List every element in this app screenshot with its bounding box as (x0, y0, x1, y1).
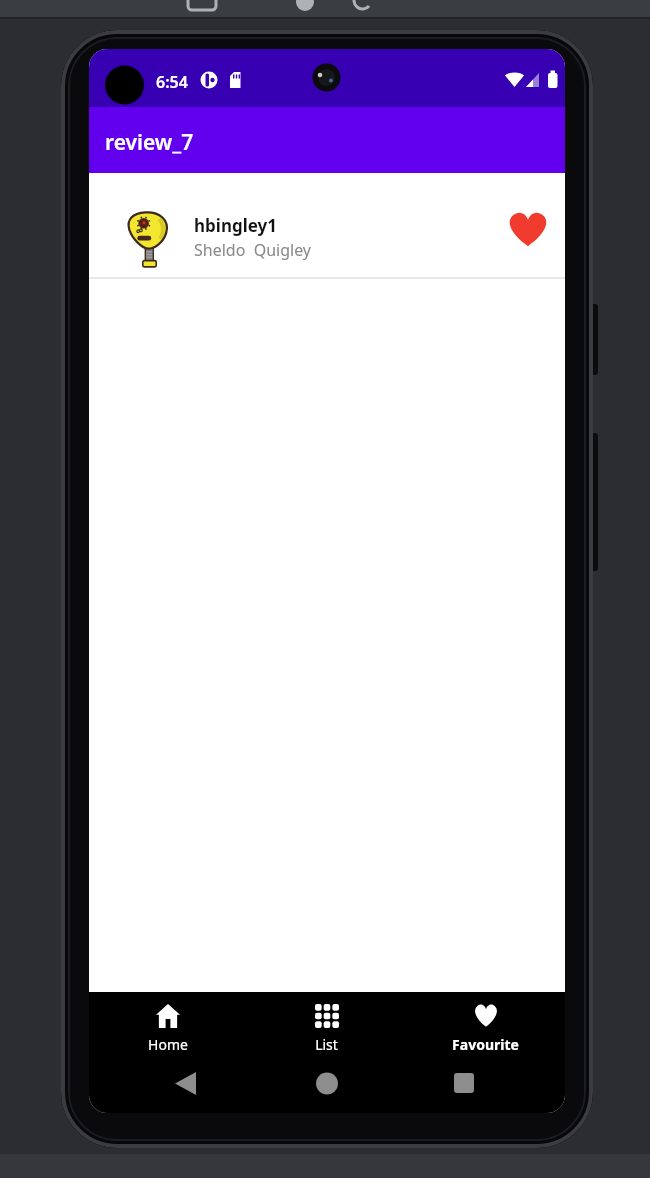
button[interactable]: Favourite (406, 992, 565, 1062)
staticText: hbingley1 (194, 214, 277, 237)
staticText: 6:54 (156, 71, 188, 93)
button[interactable]: List (247, 992, 406, 1062)
button[interactable] (508, 212, 548, 248)
staticText: Home (148, 1035, 188, 1054)
staticText: Favourite (452, 1035, 519, 1054)
staticText: Sheldo Quigley (194, 239, 312, 261)
button[interactable]: hbingley1 (89, 173, 565, 277)
button[interactable]: Home (89, 992, 247, 1062)
staticText: List (315, 1035, 338, 1054)
staticText: review_7 (105, 128, 194, 157)
